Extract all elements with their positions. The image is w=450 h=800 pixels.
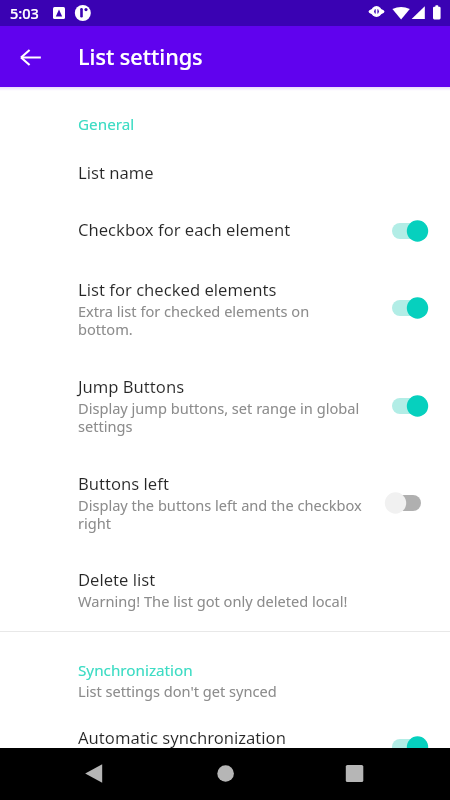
button[interactable]: Back	[0, 748, 160, 800]
button[interactable]: Automatic synchronization	[0, 726, 450, 748]
staticText: Automatic synchronization	[78, 726, 286, 748]
button[interactable]: Navigate up	[6, 33, 54, 81]
staticText: Buttons left	[78, 472, 169, 495]
button[interactable]: Delete list	[0, 568, 450, 611]
button[interactable]: Checkbox for each element	[0, 218, 450, 241]
button[interactable]: Recent apps	[292, 748, 450, 800]
staticText: 5:03	[10, 3, 39, 23]
button[interactable]: Jump Buttons	[0, 375, 450, 437]
staticText: Warning! The list got only deleted local…	[78, 591, 378, 611]
staticText: Checkbox for each element	[78, 218, 291, 241]
staticText: Display jump buttons, set range in globa…	[78, 398, 368, 437]
button[interactable]: Automatic synchronization, on	[392, 730, 438, 748]
button[interactable]: Buttons left, off	[392, 486, 438, 520]
staticText: Display the buttons left and the checkbo…	[78, 495, 368, 534]
staticText: List settings don't get synced	[78, 681, 378, 701]
staticText: Jump Buttons	[78, 375, 185, 398]
staticText: Extra list for checked elements on botto…	[78, 301, 328, 340]
staticText: Synchronization	[78, 660, 193, 681]
staticText: List settings	[78, 42, 203, 71]
staticText: General	[78, 114, 135, 135]
staticText: Delete list	[78, 568, 156, 591]
button[interactable]: List name	[0, 161, 450, 184]
button[interactable]: List for checked elements, on	[392, 291, 438, 325]
button[interactable]: List for checked elements	[0, 278, 450, 340]
staticText: List for checked elements	[78, 278, 277, 301]
button[interactable]: Jump Buttons, on	[392, 389, 438, 423]
button[interactable]: Home	[160, 748, 292, 800]
button[interactable]: Checkbox for each element, on	[392, 214, 438, 248]
button[interactable]: Buttons left	[0, 472, 450, 534]
staticText: List name	[78, 161, 154, 184]
